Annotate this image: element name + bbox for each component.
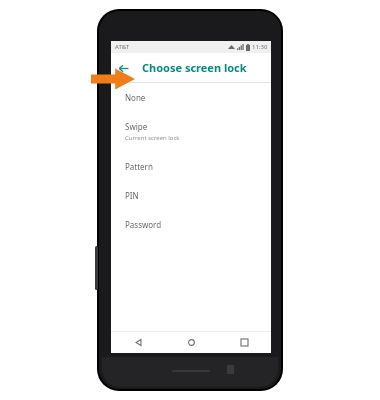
staticText: PIN	[125, 190, 139, 201]
staticText: None	[125, 92, 146, 103]
button[interactable]: Pattern	[111, 146, 271, 176]
staticText: Current screen lock	[125, 134, 180, 142]
staticText: Choose screen lock	[142, 60, 247, 75]
staticText: Swipe	[125, 121, 148, 132]
button[interactable]: None	[111, 83, 271, 107]
staticText: Password	[125, 219, 162, 230]
button[interactable]: Recent apps	[218, 331, 271, 353]
staticText: AT&T	[115, 43, 129, 51]
button[interactable]: Password	[111, 205, 271, 234]
button[interactable]: PIN	[111, 176, 271, 205]
staticText: 11:30	[252, 43, 268, 51]
button[interactable]: Back	[111, 331, 165, 353]
button[interactable]: Home	[165, 331, 218, 353]
button[interactable]: Swipe	[111, 107, 271, 146]
button[interactable]: Back	[111, 56, 135, 80]
staticText: Pattern	[125, 161, 153, 172]
